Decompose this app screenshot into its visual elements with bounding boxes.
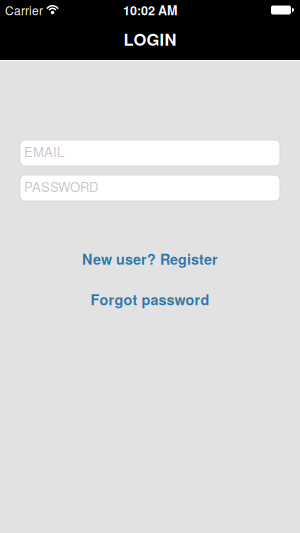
button[interactable]: PASSWORD — [20, 175, 280, 201]
button[interactable]: EMAIL — [20, 140, 280, 166]
button[interactable]: New user? Register — [82, 248, 218, 269]
staticText: Carrier — [5, 1, 43, 19]
staticText: Forgot password — [90, 289, 209, 309]
staticText: EMAIL — [24, 142, 64, 161]
staticText: PASSWORD — [24, 177, 98, 196]
staticText: 10:02 AM — [123, 1, 177, 19]
staticText: New user? Register — [82, 248, 218, 269]
staticText: LOGIN — [123, 27, 176, 51]
button[interactable]: Forgot password — [90, 289, 209, 309]
